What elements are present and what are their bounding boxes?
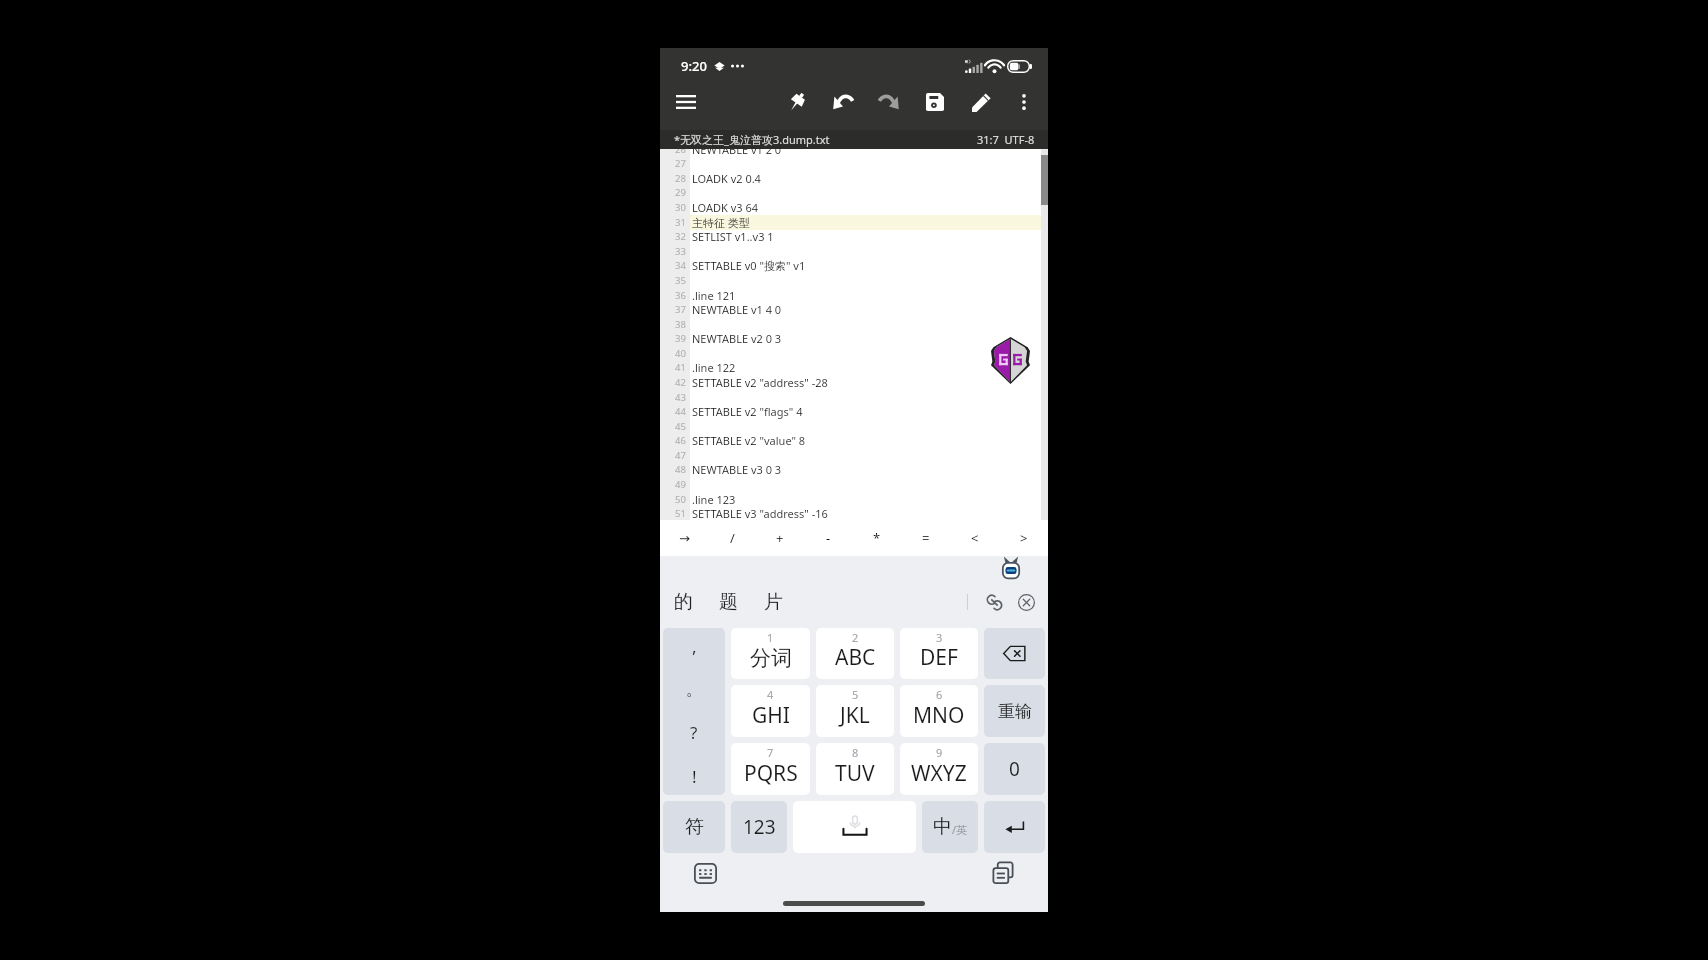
button[interactable]: 9 [900, 743, 978, 795]
staticText: LOADK v3 64 [692, 200, 758, 215]
staticText: 40 [675, 347, 686, 360]
button[interactable]: 5 [816, 685, 894, 737]
staticText: 29 [675, 186, 686, 199]
button[interactable]: 0 [984, 743, 1045, 795]
staticText: > [1020, 529, 1028, 547]
staticText: NEWTABLE v1 2 0 [692, 149, 782, 157]
staticText: 9:20 [681, 57, 707, 75]
staticText: .line 122 [692, 360, 736, 375]
staticText: /英 [952, 822, 968, 837]
button[interactable]: < [950, 520, 999, 556]
staticText: 50 [675, 493, 686, 506]
button[interactable]: Undo [820, 84, 866, 120]
staticText: 38 [675, 318, 686, 331]
staticText: 49 [675, 478, 686, 491]
button[interactable]: 题 [719, 579, 764, 625]
button[interactable]: → [660, 520, 708, 556]
staticText: , [692, 635, 697, 658]
button[interactable]: Assistant [999, 558, 1023, 582]
staticText: 48 [675, 463, 686, 476]
button[interactable]: 片 [764, 579, 809, 625]
button[interactable]: Backspace [984, 628, 1045, 679]
button[interactable]: - [804, 520, 852, 556]
button[interactable]: 6 [900, 685, 978, 737]
button[interactable]: Clipboard [987, 857, 1019, 889]
button[interactable]: 3 [900, 628, 978, 679]
staticText: 39 [675, 332, 686, 345]
staticText: 。 [686, 679, 703, 700]
staticText: 43 [675, 391, 686, 404]
button[interactable]: Keyboard layout [689, 857, 721, 889]
button[interactable]: = [901, 520, 950, 556]
staticText: 7 [767, 745, 774, 760]
button[interactable]: , [663, 628, 725, 795]
button[interactable]: Redo [866, 84, 912, 120]
staticText: TUV [835, 759, 875, 788]
button[interactable]: * [852, 520, 901, 556]
staticText: JKL [840, 701, 870, 730]
button[interactable]: Close [1012, 588, 1040, 616]
staticText: → [679, 531, 690, 546]
staticText: 44 [675, 405, 686, 418]
staticText: 0 [1009, 756, 1020, 782]
staticText: 3 [936, 630, 943, 645]
staticText: 51 [675, 507, 686, 520]
staticText: 45 [675, 420, 686, 433]
button[interactable]: Pin [774, 84, 820, 120]
button[interactable]: 中 [922, 801, 978, 853]
staticText: PQRS [744, 759, 798, 788]
button[interactable]: / [708, 520, 756, 556]
staticText: ! [692, 765, 697, 788]
staticText: 2 [852, 630, 859, 645]
staticText: - [826, 529, 831, 547]
button[interactable]: Menu [660, 84, 712, 120]
button[interactable]: > [999, 520, 1048, 556]
staticText: 27 [675, 157, 686, 170]
staticText: *无双之王_鬼泣普攻3.dump.txt [674, 132, 830, 147]
button[interactable]: Save [912, 84, 958, 120]
staticText: .line 123 [692, 492, 736, 507]
button[interactable]: 重输 [984, 685, 1045, 737]
staticText: 26 [675, 149, 686, 156]
button[interactable]: Space [793, 801, 916, 853]
button[interactable]: Enter [984, 801, 1045, 853]
button[interactable]: 123 [731, 801, 787, 853]
staticText: < [971, 529, 979, 547]
staticText: 主特征 类型 [692, 215, 750, 230]
staticText: 33 [675, 245, 686, 258]
button[interactable]: More options [1004, 84, 1043, 120]
staticText: SETTABLE v3 "address" -16 [692, 506, 828, 520]
button[interactable]: 4 [731, 685, 810, 737]
staticText: / [730, 529, 735, 547]
staticText: 中 [933, 815, 952, 839]
staticText: WXYZ [911, 759, 967, 788]
button[interactable]: 8 [816, 743, 894, 795]
staticText: 符 [685, 815, 704, 839]
staticText: 片 [764, 590, 783, 614]
staticText: 31 [675, 216, 686, 229]
staticText: ? [690, 721, 698, 744]
staticText: 28 [675, 172, 686, 185]
staticText: * [873, 529, 881, 547]
button[interactable]: Edit [958, 84, 1004, 120]
button[interactable]: + [756, 520, 804, 556]
button[interactable]: 符 [663, 801, 725, 853]
staticText: + [776, 529, 784, 547]
staticText: 34 [675, 259, 686, 272]
staticText: 6 [936, 687, 943, 702]
staticText: NEWTABLE v2 0 3 [692, 331, 782, 346]
staticText: 9 [936, 745, 943, 760]
button[interactable]: 2 [816, 628, 894, 679]
button[interactable]: 1 [731, 628, 810, 679]
staticText: 重输 [998, 701, 1032, 722]
staticText: 36 [675, 289, 686, 302]
staticText: 30 [675, 201, 686, 214]
staticText: 123 [743, 814, 776, 840]
button[interactable]: 7 [731, 743, 810, 795]
staticText: 46 [675, 434, 686, 447]
staticText: 分词 [750, 645, 792, 671]
button[interactable]: 的 [674, 579, 719, 625]
staticText: SETTABLE v2 "flags" 4 [692, 404, 803, 419]
staticText: 42 [675, 376, 686, 389]
button[interactable]: Attach [980, 588, 1008, 616]
